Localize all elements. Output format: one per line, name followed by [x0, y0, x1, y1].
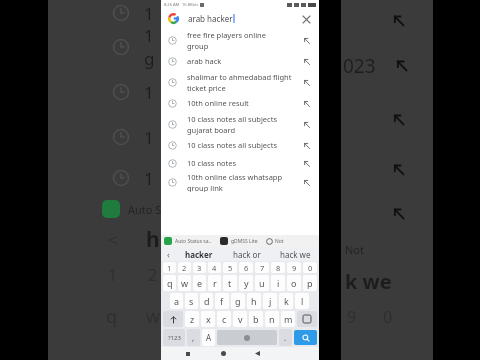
button[interactable]: 1 [163, 262, 176, 273]
staticText: group [187, 41, 209, 51]
button[interactable]: Home [216, 347, 230, 360]
button[interactable]: Insert suggestion [301, 98, 312, 109]
button[interactable]: arab hack [161, 52, 319, 70]
staticText: 1 [167, 263, 172, 273]
staticText: 10 c [144, 126, 162, 149]
button[interactable]: 7 [255, 262, 269, 273]
button[interactable]: Back [250, 347, 264, 360]
button[interactable]: ?123 [163, 329, 185, 346]
button[interactable]: 4 [208, 262, 221, 273]
staticText: j [269, 295, 272, 307]
button[interactable]: Shift [163, 311, 183, 327]
button[interactable]: d [200, 293, 213, 309]
button[interactable]: 8 [271, 262, 285, 273]
staticText: 10t [144, 167, 162, 190]
staticText: r [213, 277, 217, 289]
staticText: 7 [260, 263, 265, 273]
button[interactable]: j [263, 293, 277, 309]
button[interactable]: A [202, 329, 215, 346]
staticText: 10t [144, 2, 162, 24]
button[interactable]: u [255, 275, 269, 291]
button[interactable]: c [217, 311, 231, 327]
button[interactable]: Insert suggestion [301, 177, 312, 188]
staticText: 9 [347, 306, 357, 328]
button[interactable]: 10 class notes all subjects 2023 [161, 112, 319, 136]
button[interactable]: hack or [223, 247, 271, 261]
button[interactable]: g [231, 293, 245, 309]
button[interactable]: q [163, 275, 176, 291]
button[interactable]: w [178, 275, 191, 291]
staticText: ‹ [167, 248, 170, 260]
button[interactable]: 0 [303, 262, 317, 273]
button[interactable]: 10 class notes [161, 154, 319, 172]
button[interactable]: Search [294, 330, 317, 345]
button[interactable]: r [208, 275, 221, 291]
staticText: 10th online class whatsapp [187, 172, 283, 182]
button[interactable]: Insert suggestion [301, 140, 312, 151]
button[interactable]: arab hacker [161, 9, 319, 28]
button[interactable]: h [247, 293, 261, 309]
button[interactable]: hacker [175, 247, 223, 261]
button[interactable]: Clear search [300, 13, 312, 25]
staticText: a [174, 295, 180, 307]
button[interactable]: z [185, 311, 199, 327]
button[interactable]: Insert suggestion [301, 35, 312, 46]
button[interactable]: 2 [178, 262, 191, 273]
button[interactable]: shalimar to ahmedabad flight [161, 70, 319, 94]
button[interactable]: o [287, 275, 301, 291]
button[interactable]: y [239, 275, 253, 291]
button[interactable]: 10th online class whatsapp [161, 172, 319, 192]
button[interactable]: b [249, 311, 263, 327]
button[interactable]: x [201, 311, 215, 327]
staticText: hack we [280, 249, 311, 260]
button[interactable]: f [215, 293, 229, 309]
button[interactable]: l [295, 293, 309, 309]
button[interactable]: 10 class notes all subjects [161, 136, 319, 154]
staticText: p [307, 277, 313, 289]
button[interactable]: Insert suggestion [301, 158, 312, 169]
staticText: m [284, 313, 293, 325]
button[interactable]: a [170, 293, 183, 309]
staticText: h [251, 295, 257, 307]
button[interactable]: 10th online result [161, 94, 319, 112]
staticText: g [235, 295, 241, 307]
button[interactable]: m [281, 311, 295, 327]
button[interactable]: i [271, 275, 285, 291]
button[interactable]: free fire players online whatsapp [161, 28, 319, 52]
staticText: hack or [233, 249, 261, 260]
staticText: ?123 [168, 334, 181, 342]
button[interactable]: Insert suggestion [301, 77, 312, 88]
button[interactable]: . [279, 329, 292, 346]
button[interactable]: Recents [181, 347, 195, 360]
button[interactable]: 3 [193, 262, 206, 273]
button[interactable]: Previous suggestions [161, 247, 175, 261]
staticText: k [284, 295, 289, 307]
staticText: 10 c [144, 24, 162, 47]
button[interactable]: v [233, 311, 247, 327]
staticText: Auto Status sa.. [175, 238, 212, 245]
button[interactable]: Insert suggestion [301, 56, 312, 67]
staticText: k we [345, 268, 392, 295]
button[interactable]: 6 [239, 262, 253, 273]
staticText: Not [345, 242, 364, 257]
button[interactable]: 5 [223, 262, 237, 273]
button[interactable]: hack we [271, 247, 319, 261]
button[interactable]: Space [217, 330, 277, 345]
button[interactable]: 9 [287, 262, 301, 273]
staticText: 16.8Kb/s [182, 2, 199, 7]
button[interactable]: e [193, 275, 206, 291]
button[interactable]: Insert suggestion [301, 119, 312, 130]
staticText: 10 class notes [187, 158, 237, 168]
button[interactable]: s [185, 293, 198, 309]
button[interactable]: Backspace [297, 311, 317, 327]
staticText: w [181, 277, 189, 289]
button[interactable]: p [303, 275, 317, 291]
staticText: l [301, 295, 304, 307]
button[interactable]: k [279, 293, 293, 309]
button[interactable]: , [187, 329, 200, 346]
button[interactable]: t [223, 275, 237, 291]
staticText: w [146, 304, 161, 329]
button[interactable]: n [265, 311, 279, 327]
